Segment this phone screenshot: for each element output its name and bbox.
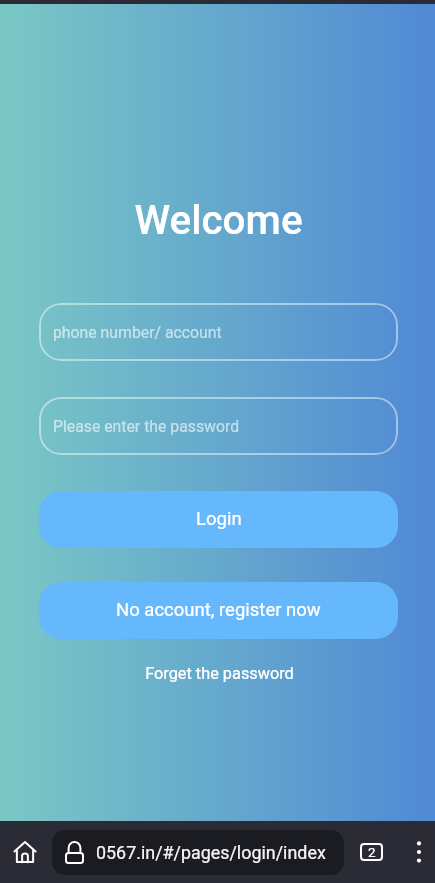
staticText: 2 [368,844,376,860]
button[interactable]: No account, register now [39,582,398,639]
staticText: No account, register now [116,599,321,621]
staticText: Please enter the password [53,417,240,436]
button[interactable]: Tabs [350,821,392,883]
button[interactable]: 0567.in/#/pages/login/index [52,830,344,875]
staticText: Forget the password [2,664,435,683]
button[interactable]: Home [4,821,46,883]
staticText: Welcome [1,196,435,243]
button[interactable]: Login [39,491,398,548]
button[interactable]: More options [400,821,435,883]
staticText: Login [196,508,242,530]
button[interactable]: phone number/ account [39,303,398,361]
staticText: 0567.in/#/pages/login/index [96,842,326,863]
button[interactable]: Please enter the password [39,397,398,455]
staticText: phone number/ account [53,323,222,342]
